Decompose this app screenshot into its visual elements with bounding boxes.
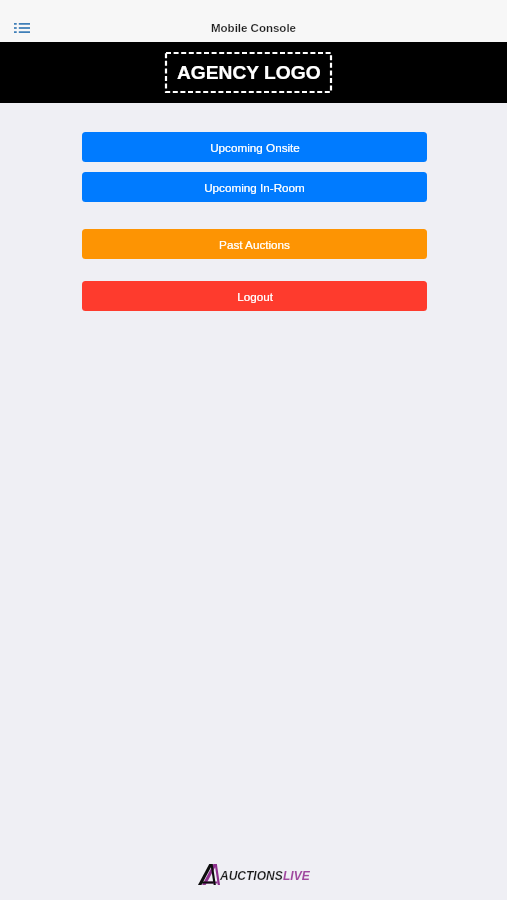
staticText: AUCTIONS	[220, 869, 283, 882]
button[interactable]: Open navigation menu	[11, 20, 33, 36]
button[interactable]: Past Auctions	[82, 229, 427, 259]
staticText: Upcoming In-Room	[204, 181, 305, 194]
button[interactable]: Upcoming Onsite	[82, 132, 427, 162]
staticText: Past Auctions	[219, 238, 290, 251]
staticText: LIVE	[283, 869, 310, 882]
staticText: Logout	[237, 290, 273, 303]
button[interactable]: Upcoming In-Room	[82, 172, 427, 202]
staticText: Upcoming Onsite	[210, 141, 300, 154]
button[interactable]: Logout	[82, 281, 427, 311]
staticText: AGENCY LOGO	[177, 62, 321, 83]
staticText: Mobile Console	[211, 22, 296, 35]
